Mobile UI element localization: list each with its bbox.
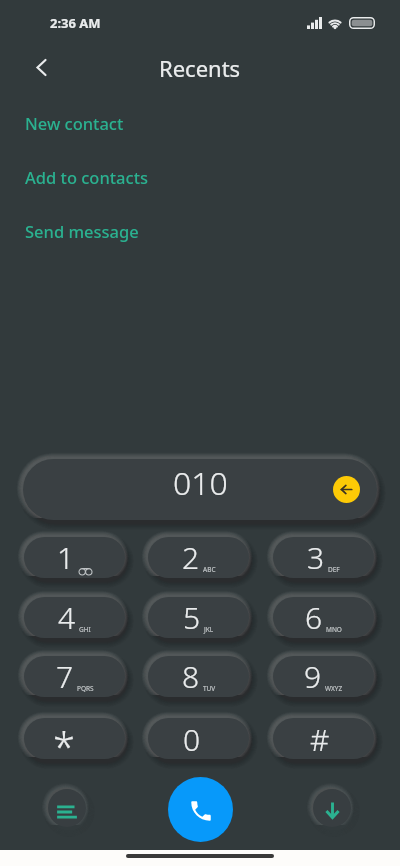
staticText: DEF bbox=[328, 565, 340, 574]
staticText: # bbox=[310, 719, 330, 759]
button[interactable]: # bbox=[273, 718, 374, 759]
button[interactable]: 7 bbox=[24, 656, 125, 697]
staticText: 0 bbox=[183, 719, 201, 759]
staticText: 5 bbox=[183, 597, 201, 638]
staticText: ABC bbox=[203, 565, 216, 574]
staticText: Add to contacts bbox=[25, 166, 148, 188]
button[interactable]: Hide keypad bbox=[313, 789, 351, 827]
staticText: * bbox=[53, 719, 76, 759]
staticText: 9 bbox=[304, 656, 322, 697]
staticText: 2:36 AM bbox=[50, 14, 101, 32]
staticText: 010 bbox=[173, 461, 228, 505]
button[interactable]: New contact bbox=[0, 99, 400, 147]
button[interactable]: Back bbox=[21, 47, 61, 87]
button[interactable]: Send message bbox=[0, 207, 400, 255]
staticText: 3 bbox=[307, 537, 325, 578]
button[interactable]: 5 bbox=[148, 597, 249, 638]
button[interactable]: * bbox=[24, 718, 125, 759]
button[interactable]: 3 bbox=[273, 537, 374, 578]
button[interactable]: Call bbox=[168, 777, 233, 842]
button[interactable]: 2 bbox=[148, 537, 249, 578]
staticText: New contact bbox=[25, 112, 124, 134]
button[interactable]: 0 bbox=[148, 718, 249, 759]
staticText: Recents bbox=[159, 53, 241, 83]
staticText: TUV bbox=[203, 684, 216, 693]
staticText: WXYZ bbox=[325, 684, 343, 693]
button[interactable]: 1 bbox=[24, 537, 125, 578]
button[interactable]: Backspace bbox=[333, 476, 360, 503]
staticText: 7 bbox=[56, 656, 74, 697]
staticText: Send message bbox=[25, 220, 139, 242]
staticText: MNO bbox=[326, 625, 342, 634]
staticText: 4 bbox=[58, 597, 76, 638]
staticText: 6 bbox=[305, 597, 323, 638]
button[interactable]: 4 bbox=[24, 597, 125, 638]
staticText: 8 bbox=[182, 656, 200, 697]
button[interactable]: 6 bbox=[273, 597, 374, 638]
button[interactable]: Dialer menu bbox=[48, 789, 86, 827]
staticText: GHI bbox=[79, 625, 91, 634]
staticText: PQRS bbox=[77, 684, 94, 693]
staticText: JKL bbox=[204, 625, 214, 634]
staticText: 1 bbox=[57, 537, 75, 578]
button[interactable]: 9 bbox=[273, 656, 374, 697]
button[interactable]: Add to contacts bbox=[0, 153, 400, 201]
button[interactable]: 8 bbox=[148, 656, 249, 697]
staticText: 2 bbox=[182, 537, 200, 578]
